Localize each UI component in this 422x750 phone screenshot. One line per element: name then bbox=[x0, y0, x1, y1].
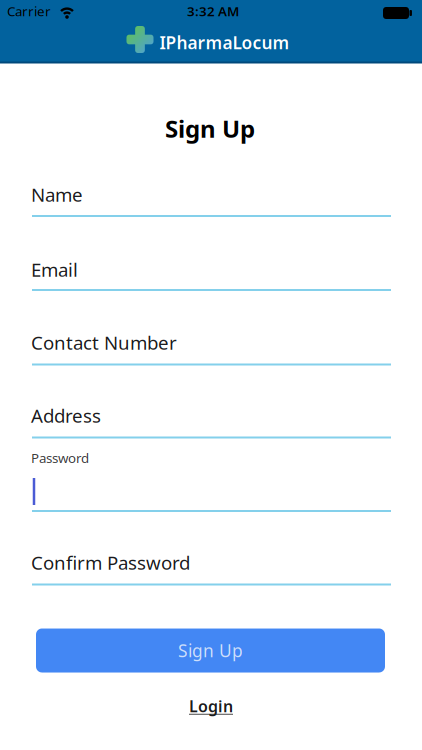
button[interactable]: Name bbox=[32, 182, 391, 217]
staticText: Login bbox=[189, 695, 233, 717]
button[interactable]: Password bbox=[32, 449, 391, 512]
staticText: Address bbox=[31, 403, 101, 428]
staticText: Email bbox=[31, 257, 78, 282]
button[interactable]: Login bbox=[189, 695, 233, 717]
button[interactable]: Contact Number bbox=[32, 330, 391, 365]
button[interactable]: Sign Up bbox=[36, 628, 385, 672]
staticText: IPharmaLocum bbox=[159, 31, 289, 54]
staticText: Sign Up bbox=[165, 113, 255, 144]
button[interactable]: Address bbox=[32, 403, 391, 438]
button[interactable]: Email bbox=[32, 257, 391, 291]
staticText: Carrier bbox=[7, 2, 51, 20]
staticText: 3:32 AM bbox=[187, 2, 239, 20]
staticText: Confirm Password bbox=[31, 550, 190, 575]
staticText: Sign Up bbox=[178, 639, 243, 662]
staticText: Name bbox=[31, 182, 83, 207]
staticText: Contact Number bbox=[31, 330, 177, 355]
staticText: Password bbox=[31, 449, 89, 467]
button[interactable]: Confirm Password bbox=[32, 550, 391, 585]
